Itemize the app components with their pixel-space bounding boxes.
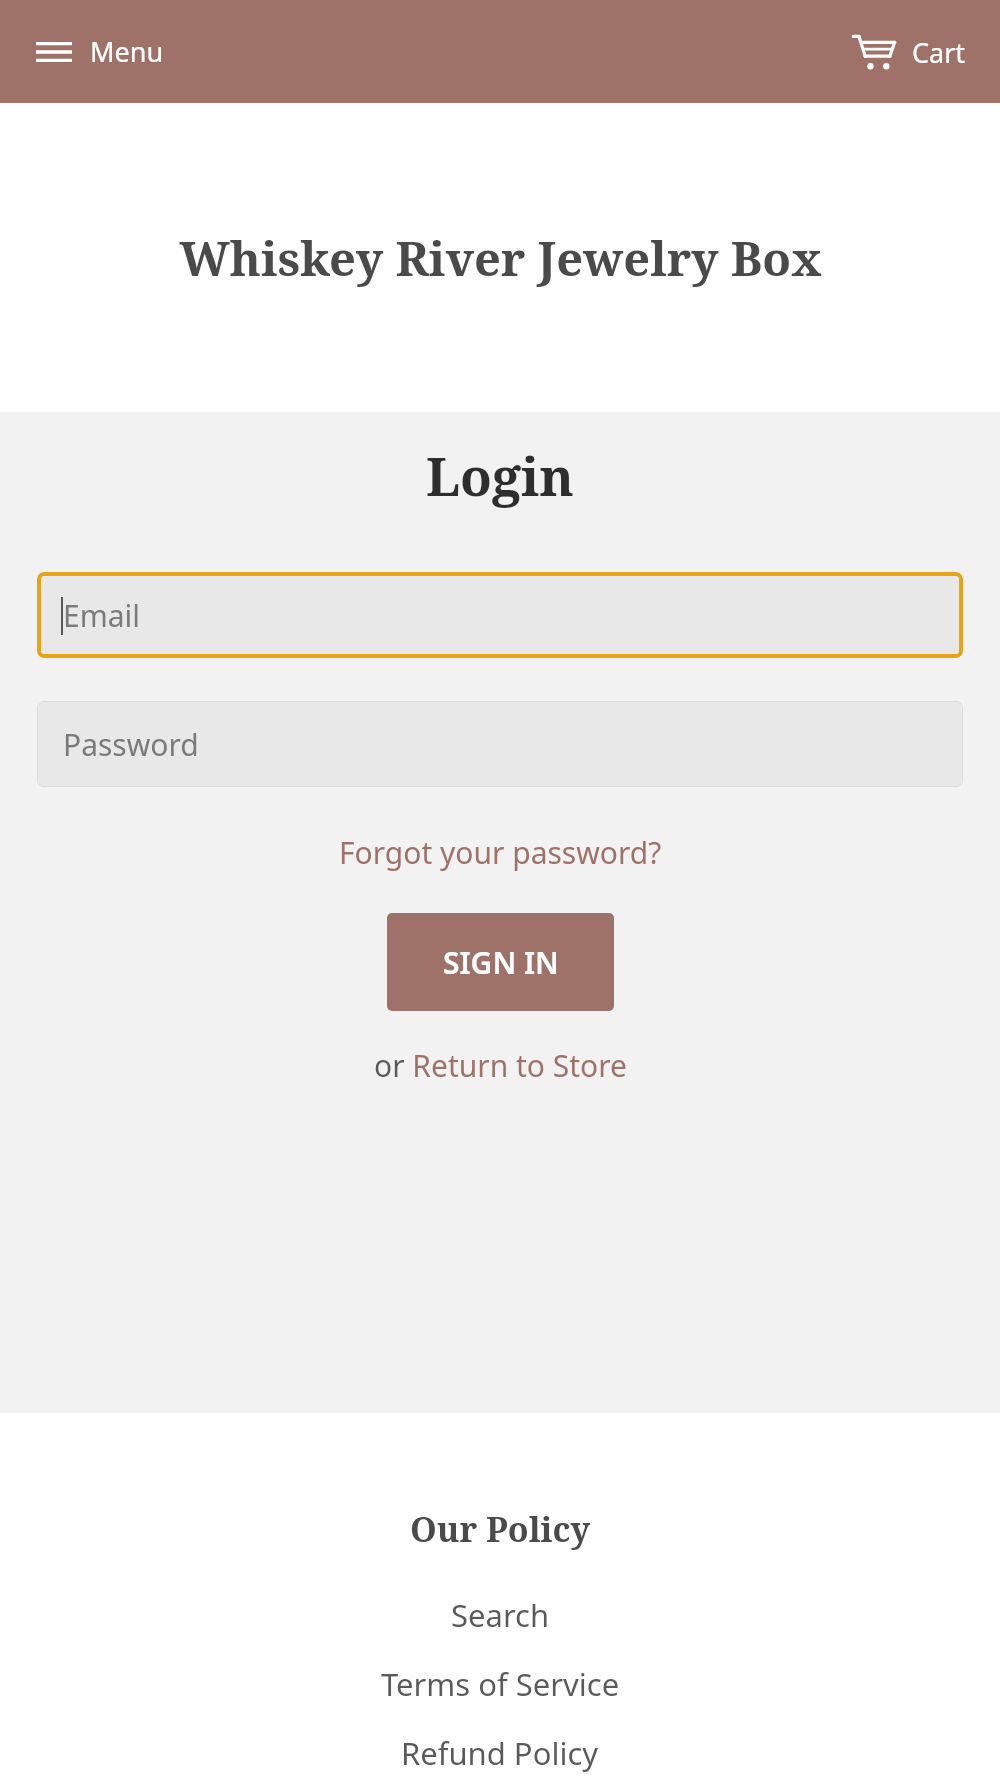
button[interactable]: Forgot your password?	[323, 824, 678, 881]
staticText: Login	[426, 440, 575, 511]
button[interactable]: Terms of Service	[357, 1661, 644, 1707]
staticText: Forgot your password?	[339, 832, 662, 873]
staticText: Search	[451, 1594, 550, 1636]
staticText: Cart	[912, 34, 966, 71]
staticText: Password	[63, 724, 199, 765]
button[interactable]: Refund Policy	[377, 1730, 623, 1776]
staticText: SIGN IN	[443, 942, 559, 983]
button[interactable]: Cart	[832, 19, 1000, 85]
button[interactable]: Search	[427, 1592, 574, 1638]
staticText: or Return to Store	[374, 1045, 627, 1086]
button[interactable]: Password	[37, 701, 963, 787]
staticText: Menu	[90, 33, 164, 70]
staticText: Terms of Service	[381, 1663, 620, 1705]
staticText: Email	[63, 595, 141, 636]
staticText: Whiskey River Jewelry Box	[179, 226, 822, 290]
staticText: Refund Policy	[401, 1732, 599, 1774]
button[interactable]: Email	[37, 572, 963, 658]
other: Cart	[852, 31, 896, 73]
button[interactable]: SIGN IN	[387, 913, 614, 1011]
staticText: Our Policy	[410, 1506, 591, 1552]
button[interactable]: or Return to Store	[358, 1037, 643, 1094]
button[interactable]: Menu	[0, 21, 184, 82]
